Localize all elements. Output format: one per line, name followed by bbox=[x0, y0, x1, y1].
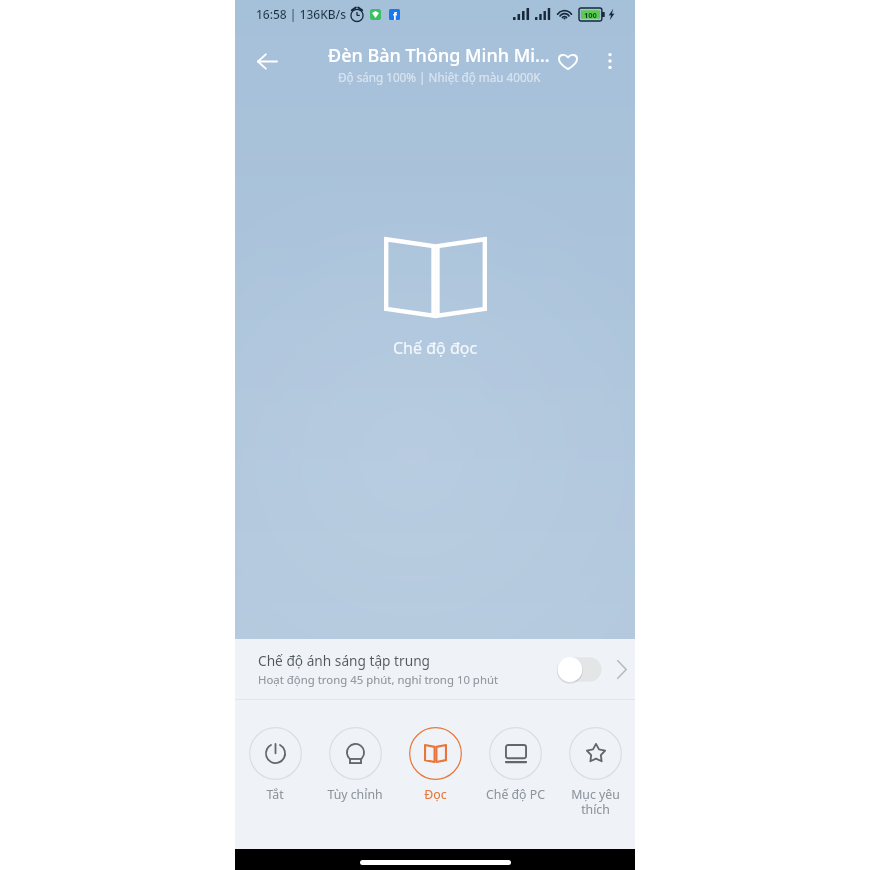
staticText: f bbox=[393, 9, 397, 20]
staticText: Tắt bbox=[266, 786, 284, 803]
staticText: Độ sáng 100% | Nhiệt độ màu 4000K bbox=[338, 69, 541, 85]
button[interactable]: More options bbox=[590, 43, 630, 79]
staticText: 16:58 | 136KB/s bbox=[256, 6, 347, 22]
staticText: Chế độ đọc bbox=[393, 337, 478, 359]
button[interactable]: Tắt bbox=[235, 727, 315, 803]
button[interactable]: Back bbox=[248, 43, 287, 79]
staticText: Hoạt động trong 45 phút, nghỉ trong 10 p… bbox=[258, 672, 499, 688]
staticText: Tùy chỉnh bbox=[327, 786, 383, 803]
staticText: Chế độ PC bbox=[486, 786, 545, 803]
staticText: Chế độ ánh sáng tập trung bbox=[258, 651, 431, 670]
button[interactable]: Tùy chỉnh bbox=[315, 727, 395, 803]
button[interactable]: Mục yêu thích bbox=[555, 727, 635, 818]
staticText: Mục yêu thích bbox=[571, 786, 620, 818]
button[interactable]: Chế độ PC bbox=[475, 727, 555, 803]
button[interactable]: Chế độ ánh sáng tập trung bbox=[235, 639, 635, 699]
staticText: Đèn Bàn Thông Minh Mi… bbox=[328, 43, 550, 68]
button[interactable]: Đọc bbox=[395, 727, 475, 803]
button[interactable]: Favorite bbox=[546, 43, 590, 79]
staticText: Đọc bbox=[424, 786, 447, 803]
staticText: 100 bbox=[584, 10, 597, 20]
